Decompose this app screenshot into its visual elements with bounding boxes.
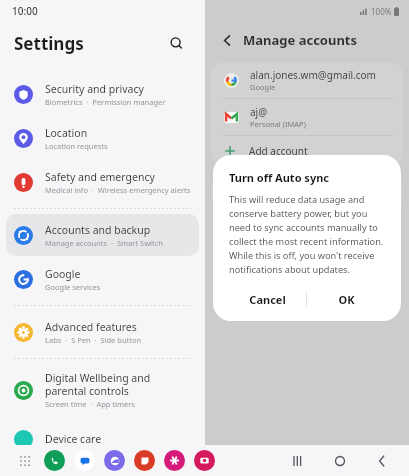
staticText: Google <box>250 82 276 92</box>
button[interactable]: Gallery <box>164 450 185 471</box>
staticText: Google services <box>45 282 101 292</box>
button[interactable]: Phone <box>44 450 65 471</box>
button[interactable]: Apps <box>14 450 36 472</box>
button[interactable]: alan.jones.wm@gmail.com <box>211 62 403 98</box>
staticText: alan.jones.wm@gmail.com <box>250 68 376 82</box>
button[interactable]: Google <box>6 258 199 300</box>
button[interactable]: Back <box>369 448 395 474</box>
staticText: Manage accounts <box>243 31 358 49</box>
staticText: Safety and emergency <box>45 170 155 184</box>
button[interactable]: Camera <box>194 450 215 471</box>
staticText: Manage accounts · Smart Switch <box>45 238 163 248</box>
button[interactable]: Safety and emergency <box>6 161 199 203</box>
staticText: Settings <box>14 32 84 55</box>
button[interactable]: Digital Wellbeing and parental controls <box>6 364 199 416</box>
button[interactable]: Recents <box>285 448 311 474</box>
button[interactable]: Location <box>6 117 199 159</box>
staticText: Personal (IMAP) <box>250 119 306 129</box>
button[interactable]: Messages <box>74 450 95 471</box>
staticText: Auto sync data <box>223 185 296 199</box>
staticText: Device care <box>45 432 102 446</box>
staticText: Digital Wellbeing and parental controls <box>45 371 191 398</box>
button[interactable]: aj@ <box>211 99 403 135</box>
button[interactable]: Internet <box>104 450 125 471</box>
button[interactable]: Search <box>161 28 191 58</box>
staticText: Accounts and backup <box>45 223 151 237</box>
staticText: Biometrics · Permission manager <box>45 97 166 107</box>
staticText: OK <box>338 292 355 307</box>
staticText: aj@ <box>250 105 268 119</box>
staticText: Cancel <box>249 292 286 307</box>
staticText: Turn off Auto sync <box>229 170 330 185</box>
button[interactable]: OK <box>307 285 385 313</box>
staticText: Advanced features <box>45 320 137 334</box>
staticText: Labs · S Pen · Side button <box>45 335 142 345</box>
staticText: Security and privacy <box>45 82 144 96</box>
button[interactable]: Security and privacy <box>6 73 199 115</box>
button[interactable]: Cancel <box>229 285 306 313</box>
button[interactable]: Auto sync data <box>211 175 403 209</box>
staticText: Google <box>45 267 81 281</box>
staticText: 10:00 <box>12 4 38 18</box>
button[interactable]: Add account <box>211 136 403 166</box>
staticText: Location requests <box>45 141 108 151</box>
staticText: Medical info · Wireless emergency alerts <box>45 185 191 195</box>
button[interactable]: Back <box>215 28 239 52</box>
button[interactable]: Notes <box>134 450 155 471</box>
staticText: Add account <box>249 144 308 158</box>
button[interactable]: Accounts and backup <box>6 214 199 256</box>
button[interactable]: Device care <box>6 418 199 460</box>
button[interactable]: Home <box>327 448 353 474</box>
staticText: This will reduce data usage and conserve… <box>229 193 385 276</box>
staticText: Screen time · App timers <box>45 399 135 409</box>
staticText: Location <box>45 126 88 140</box>
staticText: 100% <box>371 6 392 17</box>
button[interactable]: Advanced features <box>6 311 199 353</box>
